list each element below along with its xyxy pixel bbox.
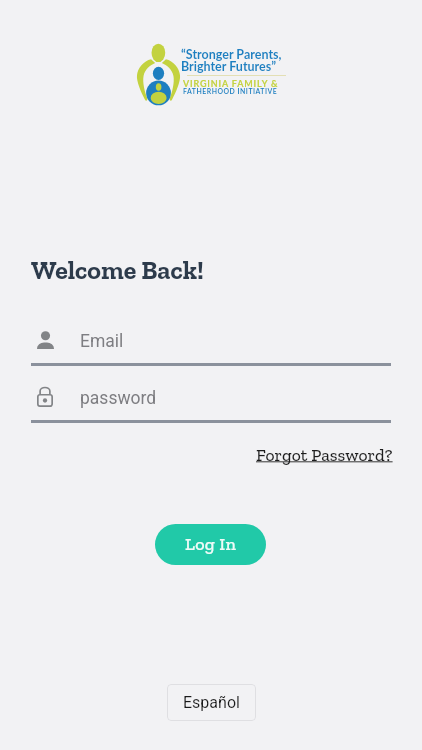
- other: Virginia Family & Fatherhood Initiative …: [136, 40, 181, 106]
- staticText: password: [80, 388, 157, 409]
- staticText: FATHERHOOD INITIATIVE: [183, 87, 278, 95]
- button[interactable]: Forgot Password?: [256, 444, 393, 465]
- button[interactable]: Log In: [155, 524, 266, 565]
- staticText: Log In: [185, 533, 237, 555]
- staticText: Forgot Password?: [256, 444, 393, 465]
- staticText: Español: [183, 693, 240, 712]
- staticText: “Stronger Parents,: [181, 47, 282, 62]
- staticText: Email: [80, 331, 124, 352]
- staticText: Welcome Back!: [31, 254, 204, 285]
- button[interactable]: [31, 321, 391, 366]
- button[interactable]: Español: [167, 684, 256, 721]
- button[interactable]: [31, 376, 391, 423]
- staticText: VIRGINIA FAMILY &: [183, 78, 279, 89]
- staticText: Brighter Futures”: [181, 59, 277, 74]
